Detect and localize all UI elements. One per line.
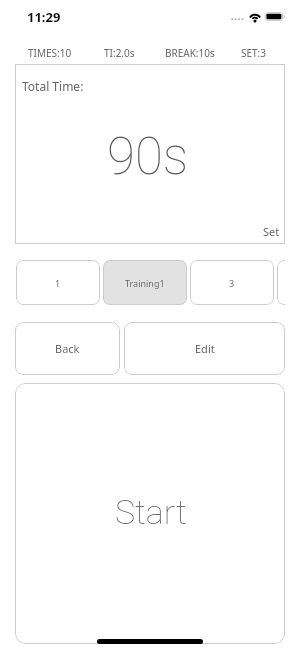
button[interactable]: Start bbox=[15, 383, 285, 644]
other: Battery bbox=[264, 11, 286, 23]
button[interactable]: Back bbox=[15, 322, 120, 375]
other: Wi-Fi bbox=[248, 11, 262, 23]
staticText: Total Time: bbox=[22, 78, 84, 94]
staticText: Back bbox=[55, 341, 80, 356]
other: Cellular signal bbox=[230, 14, 244, 24]
staticText: 3 bbox=[229, 277, 235, 289]
staticText: TI:2.0s bbox=[104, 46, 135, 60]
button[interactable]: Training1 bbox=[103, 260, 187, 305]
button[interactable]: 3 bbox=[190, 260, 274, 305]
staticText: Start bbox=[115, 492, 187, 532]
staticText: Edit bbox=[195, 341, 215, 356]
button[interactable]: 1 bbox=[16, 260, 100, 305]
staticText: 90s bbox=[107, 127, 189, 187]
button[interactable]: Total Time: bbox=[15, 64, 285, 244]
button[interactable]: 4 bbox=[277, 260, 285, 305]
staticText: 1 bbox=[55, 277, 61, 289]
staticText: Set bbox=[263, 224, 280, 239]
staticText: SET:3 bbox=[241, 46, 267, 60]
button[interactable]: Edit bbox=[124, 322, 285, 375]
staticText: TIMES:10 bbox=[28, 46, 72, 60]
staticText: 11:29 bbox=[27, 8, 61, 26]
staticText: Training1 bbox=[125, 277, 165, 289]
staticText: BREAK:10s bbox=[165, 46, 215, 60]
